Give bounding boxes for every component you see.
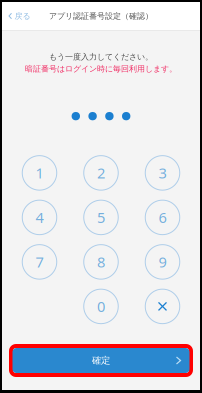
staticText: 7	[35, 252, 43, 272]
staticText: もう一度入力してください。	[49, 52, 153, 62]
button[interactable]: 4	[22, 200, 57, 235]
button[interactable]: 確定	[9, 344, 193, 377]
staticText: 0	[97, 297, 105, 316]
button[interactable]: 7	[22, 245, 57, 279]
button[interactable]: 6	[145, 200, 180, 235]
staticText: 8	[97, 252, 105, 272]
button[interactable]	[145, 289, 180, 324]
staticText: 確定	[92, 355, 110, 366]
button[interactable]: 5	[84, 200, 118, 235]
button[interactable]: 9	[145, 245, 180, 279]
staticText: 6	[158, 208, 166, 227]
staticText: 5	[97, 208, 105, 227]
button[interactable]: 8	[84, 245, 118, 279]
staticText: 4	[35, 208, 43, 227]
staticText: 2	[97, 163, 105, 183]
staticText: 暗証番号はログイン時に毎回利用します。	[25, 64, 177, 74]
button[interactable]: 戻る	[2, 5, 36, 27]
button[interactable]: 0	[84, 289, 118, 324]
button[interactable]: 1	[22, 156, 57, 190]
staticText: アプリ認証番号設定（確認）	[49, 11, 153, 21]
staticText: 戻る	[14, 11, 30, 21]
staticText: 9	[158, 252, 166, 272]
button[interactable]: 3	[145, 156, 180, 190]
button[interactable]: 2	[84, 156, 118, 190]
staticText: 1	[35, 163, 43, 183]
staticText: 3	[158, 163, 166, 183]
